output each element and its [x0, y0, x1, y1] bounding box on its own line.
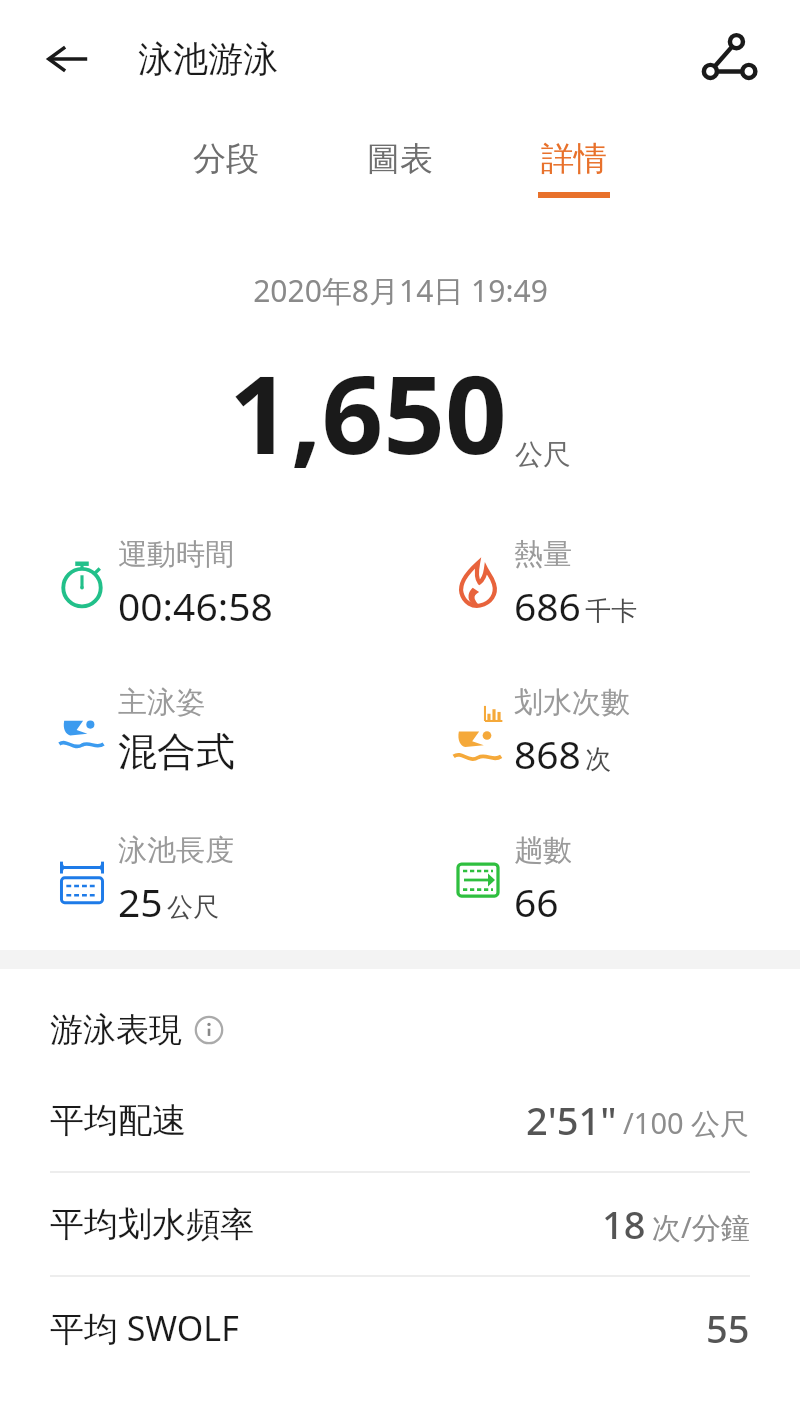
staticText: 趟數	[514, 832, 572, 869]
button[interactable]: 圖表	[352, 118, 448, 192]
staticText: 66	[514, 875, 559, 928]
staticText: 泳池游泳	[138, 37, 278, 81]
staticText: 游泳表現	[50, 1009, 182, 1051]
staticText: 熱量	[514, 536, 572, 573]
staticText: 平均划水頻率	[50, 1203, 254, 1246]
staticText: 1,650	[229, 339, 507, 486]
button[interactable]: 平均 SWOLF	[0, 1277, 800, 1379]
staticText: 2'51"	[526, 1094, 617, 1146]
staticText: /100 公尺	[623, 1103, 750, 1143]
staticText: 18	[602, 1198, 646, 1250]
staticText: 公尺	[515, 437, 571, 472]
button[interactable]: 運動時間	[46, 536, 400, 632]
button[interactable]: 熱量	[442, 536, 800, 632]
button[interactable]: 詳情	[526, 118, 622, 198]
staticText: 詳情	[541, 138, 607, 180]
button[interactable]: 平均配速	[0, 1069, 800, 1171]
staticText: 泳池長度	[118, 832, 234, 869]
staticText: 868	[514, 727, 581, 780]
button[interactable]: 趟數	[442, 832, 800, 928]
button[interactable]: 平均划水頻率	[0, 1173, 800, 1275]
staticText: 混合式	[118, 727, 235, 776]
staticText: 次/分鐘	[652, 1207, 750, 1247]
staticText: 55	[706, 1302, 750, 1354]
button[interactable]: Share	[698, 28, 760, 90]
staticText: 25	[118, 875, 163, 928]
staticText: 平均 SWOLF	[50, 1305, 239, 1351]
staticText: 次	[585, 743, 611, 776]
staticText: 主泳姿	[118, 684, 205, 721]
staticText: 平均配速	[50, 1099, 186, 1142]
staticText: 划水次數	[514, 684, 630, 721]
button[interactable]: 分段	[178, 118, 274, 192]
button[interactable]: Back	[36, 27, 100, 91]
staticText: 2020年8月14日 19:49	[253, 270, 548, 311]
button[interactable]: 泳池長度	[46, 832, 400, 928]
staticText: 公尺	[167, 891, 219, 924]
staticText: 686	[514, 579, 581, 632]
button[interactable]: 划水次數	[442, 684, 800, 780]
button[interactable]: 主泳姿	[46, 684, 400, 776]
button[interactable]: Info	[194, 1015, 224, 1045]
staticText: 運動時間	[118, 536, 234, 573]
staticText: 千卡	[585, 595, 637, 628]
staticText: 圖表	[367, 138, 433, 180]
staticText: 00:46:58	[118, 579, 273, 632]
staticText: 分段	[193, 138, 259, 180]
